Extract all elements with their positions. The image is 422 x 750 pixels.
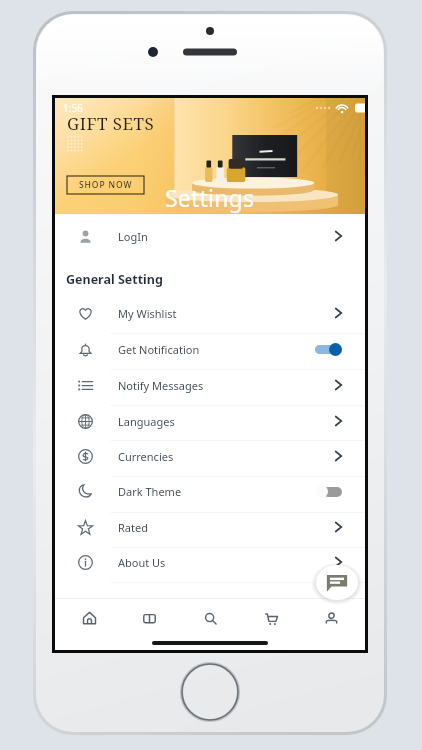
staticText: Languages [118, 414, 175, 429]
staticText: Settings [165, 182, 255, 213]
staticText: 1:56 [63, 101, 83, 115]
button[interactable]: Notify Messages [55, 367, 365, 403]
staticText: Currencies [118, 449, 174, 464]
button[interactable]: About Us [55, 544, 365, 580]
button[interactable]: Search [183, 599, 237, 637]
staticText: Dark Theme [118, 484, 182, 499]
staticText: General Setting [66, 271, 163, 288]
button[interactable]: Rated [55, 509, 365, 545]
button[interactable]: Dark Theme [55, 473, 365, 509]
button[interactable]: Languages [55, 403, 365, 439]
button[interactable]: SHOP NOW [67, 176, 144, 194]
staticText: About Us [118, 555, 166, 570]
button[interactable]: My Wishlist [55, 295, 365, 331]
staticText: Rated [118, 520, 148, 535]
staticText: SHOP NOW [79, 179, 133, 191]
button[interactable]: Cart [244, 599, 298, 637]
button[interactable]: LogIn [55, 213, 365, 259]
button[interactable]: Chat support [316, 565, 358, 600]
button[interactable]: Profile [304, 599, 358, 637]
button[interactable]: Get Notification [55, 331, 365, 367]
button[interactable]: Currencies [55, 438, 365, 474]
staticText: GIFT SETS [67, 112, 155, 135]
button[interactable] [315, 343, 342, 356]
button[interactable]: Catalog [122, 599, 176, 637]
staticText: My Wishlist [118, 306, 177, 321]
button[interactable] [315, 485, 342, 498]
staticText: Get Notification [118, 342, 200, 357]
staticText: LogIn [118, 229, 148, 244]
staticText: Notify Messages [118, 378, 204, 393]
button[interactable]: Home [62, 599, 116, 637]
